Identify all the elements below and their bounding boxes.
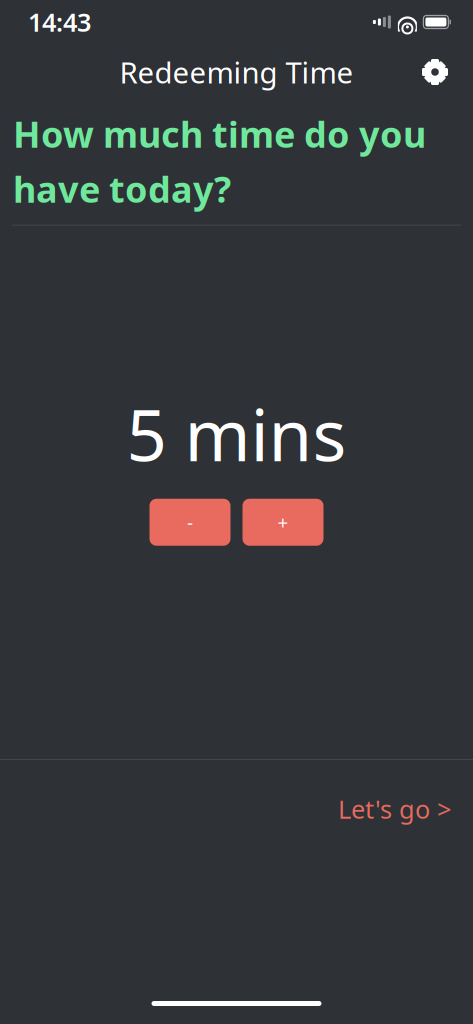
staticText: 5 mins bbox=[126, 387, 346, 481]
staticText: How much time do you have today? bbox=[13, 110, 426, 213]
button[interactable]: Let's go > bbox=[318, 778, 471, 840]
button[interactable]: Settings bbox=[411, 50, 459, 94]
staticText: 14:43 bbox=[28, 5, 91, 39]
staticText: + bbox=[277, 510, 288, 535]
button[interactable]: Decrease time bbox=[149, 499, 230, 546]
staticText: - bbox=[187, 510, 193, 535]
staticText: Let's go > bbox=[338, 792, 451, 826]
staticText: Redeeming Time bbox=[119, 52, 353, 91]
button[interactable]: Increase time bbox=[242, 499, 323, 546]
